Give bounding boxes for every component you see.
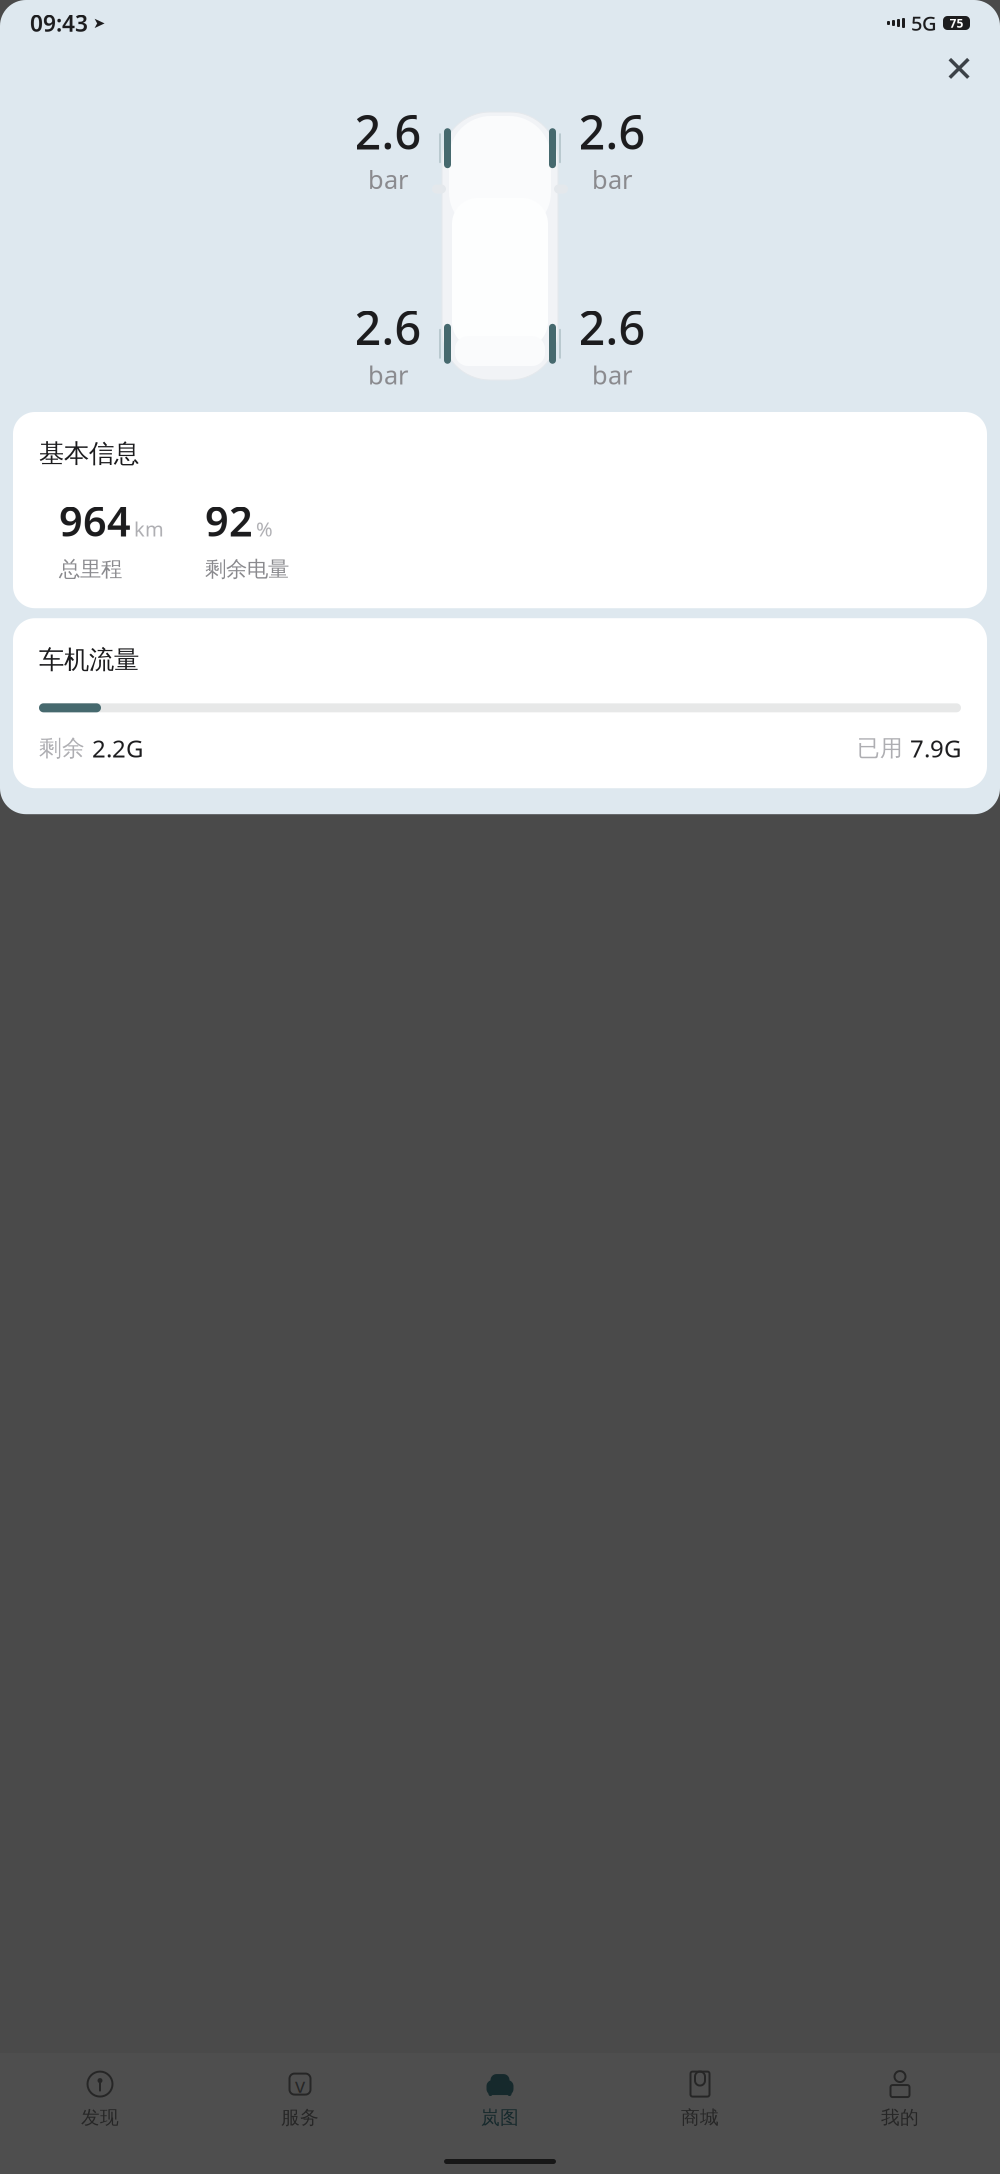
button[interactable]: Close <box>936 46 982 92</box>
staticText: 车机流量 <box>39 644 139 675</box>
button[interactable]: 极速加热 <box>252 94 475 190</box>
button[interactable]: 我的 <box>800 2063 1000 2135</box>
staticText: 19.1 <box>30 17 110 70</box>
staticText: 92 <box>205 493 253 548</box>
button[interactable]: 商城 <box>600 2063 800 2135</box>
staticText: 基本信息 <box>39 438 139 469</box>
staticText: 商城 <box>681 2106 719 2129</box>
staticText: 5G <box>911 10 937 36</box>
staticText: ✕ <box>944 49 974 89</box>
staticText: 岚图 <box>481 2106 519 2129</box>
button[interactable]: 岚图 <box>400 2063 600 2135</box>
staticText: 已用 <box>857 734 903 762</box>
staticText: 剩余电量 <box>205 556 289 582</box>
button[interactable]: v <box>200 2063 400 2135</box>
staticText: 2.2G <box>92 732 143 764</box>
staticText: 极速加热 <box>318 154 410 182</box>
staticText: km <box>134 516 164 542</box>
button[interactable]: 基本信息 <box>13 412 987 608</box>
staticText: 我的 <box>881 2106 919 2129</box>
staticText: v <box>295 2072 305 2098</box>
staticText: 2.6 <box>354 100 421 162</box>
staticText: 充电设置 <box>590 155 682 183</box>
staticText: 09:43 <box>30 8 88 38</box>
staticText: % <box>256 516 273 542</box>
staticText: 964 <box>59 493 131 548</box>
button[interactable]: 发现 <box>0 2063 200 2135</box>
staticText: 服务 <box>281 2106 319 2129</box>
staticText: 2.6 <box>578 296 645 358</box>
staticText: bar <box>368 358 408 392</box>
staticText: 发现 <box>81 2106 119 2129</box>
staticText: 总里程 <box>59 556 122 582</box>
staticText: ➤ <box>93 15 105 31</box>
staticText: 7.9G <box>910 732 961 764</box>
staticText: 2.6 <box>578 100 645 162</box>
staticText: bar <box>592 358 632 392</box>
staticText: bar <box>592 162 632 196</box>
staticText: bar <box>368 162 408 196</box>
staticText: 75 <box>949 15 963 31</box>
staticText: 剩余 <box>39 734 85 762</box>
staticText: 2.6 <box>354 296 421 358</box>
button[interactable]: 车机流量 <box>13 618 987 788</box>
button[interactable]: 充电设置 <box>525 93 747 191</box>
